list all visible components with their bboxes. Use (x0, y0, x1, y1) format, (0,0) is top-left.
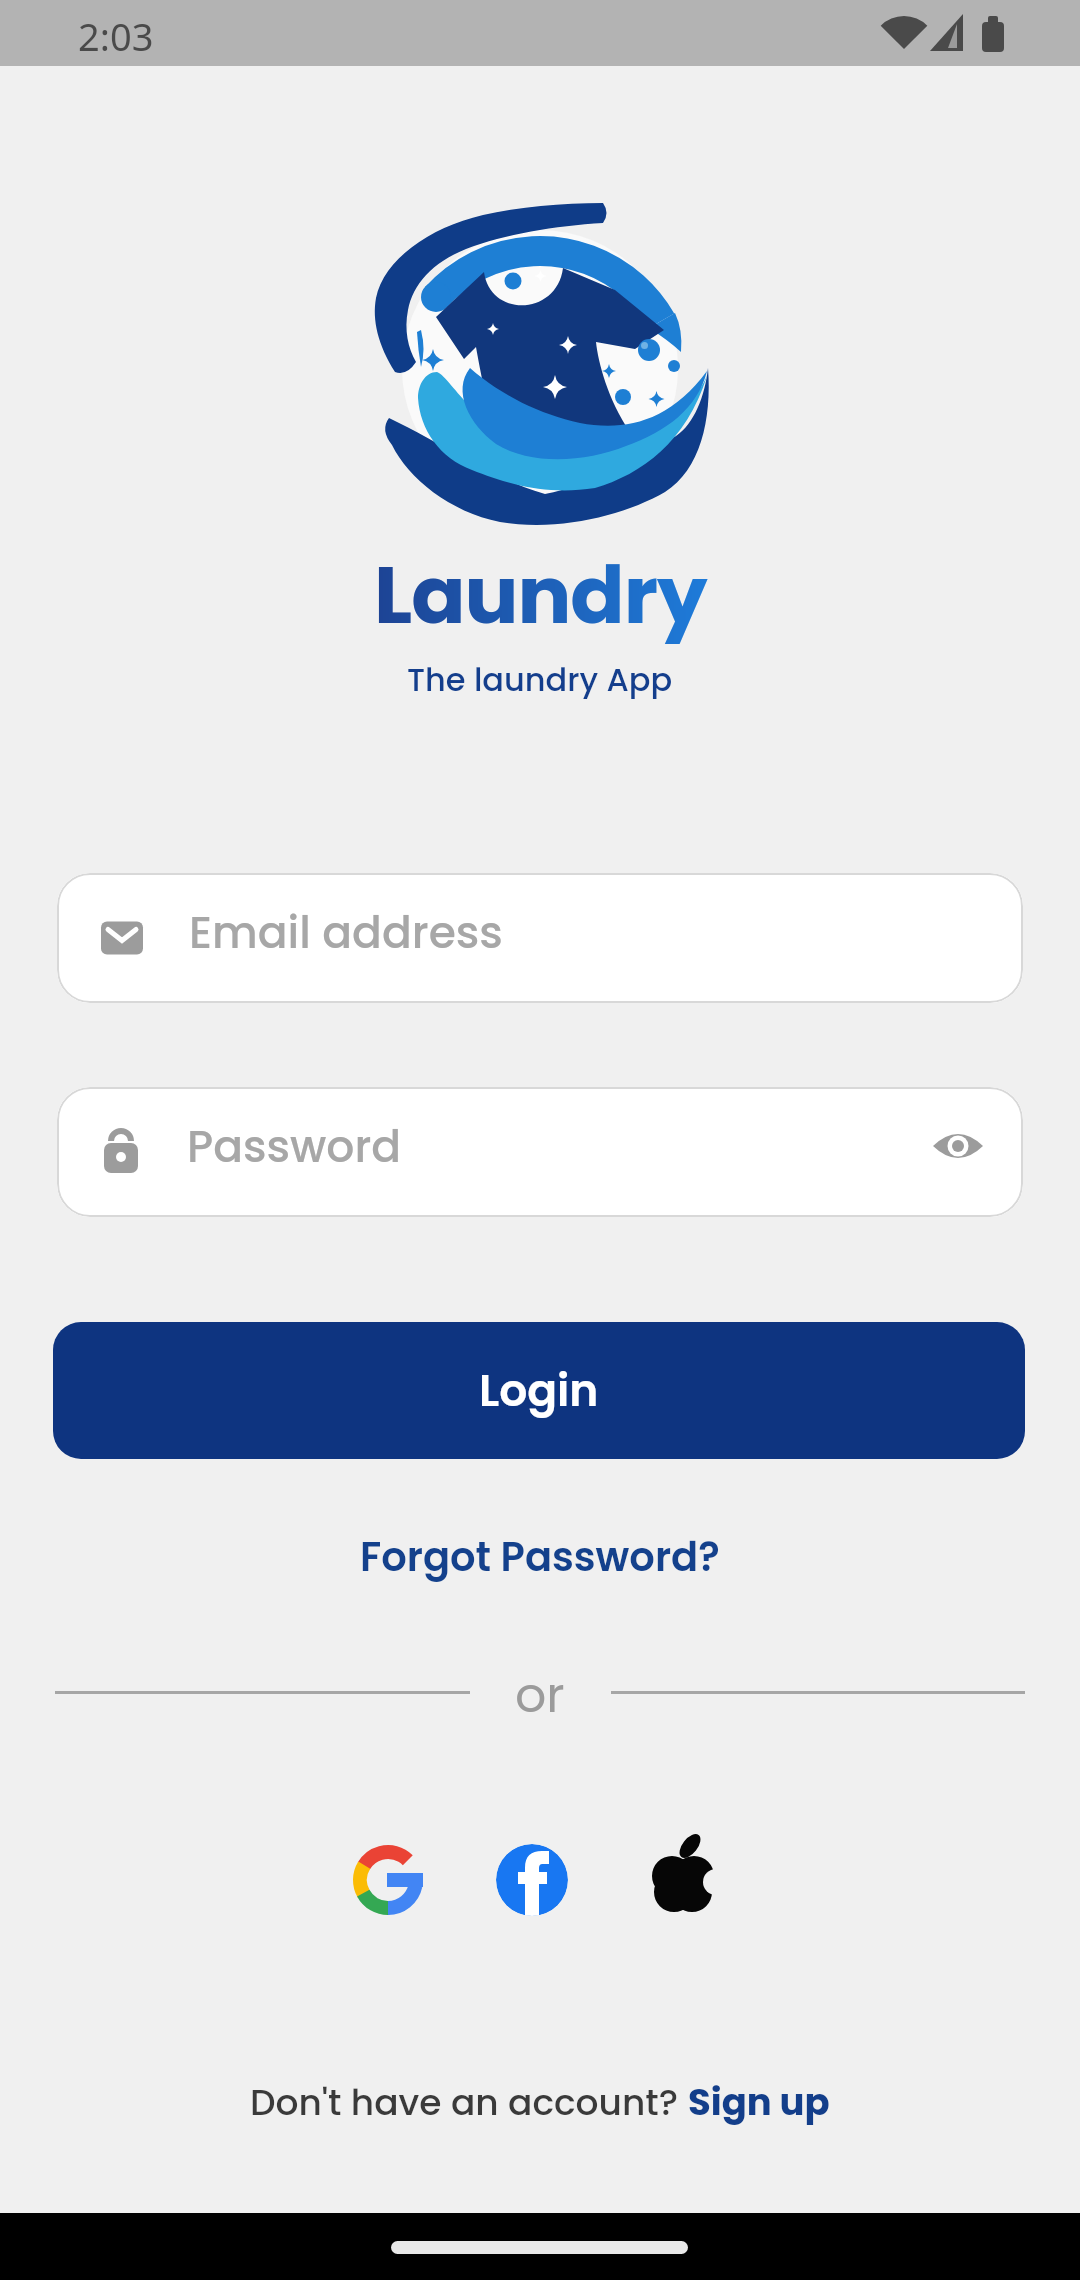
button[interactable]: Login (53, 1322, 1025, 1459)
staticText: 2:03 (78, 10, 154, 62)
staticText: The laundry App (407, 657, 673, 702)
staticText: Email address (189, 902, 503, 964)
button[interactable]: Sign up (688, 2076, 830, 2128)
staticText: or (515, 1661, 565, 1725)
button[interactable]: Forgot Password? (360, 1529, 720, 1585)
button[interactable] (352, 1844, 424, 1916)
button[interactable]: Email address (57, 873, 1023, 1003)
staticText: Don't have an account? (250, 2077, 688, 2127)
button[interactable] (646, 1836, 720, 1920)
staticText: Login (479, 1360, 599, 1422)
staticText: Password (187, 1116, 402, 1178)
staticText: Laundry (374, 539, 707, 651)
button[interactable]: Password (57, 1087, 1023, 1217)
button[interactable] (496, 1844, 568, 1916)
